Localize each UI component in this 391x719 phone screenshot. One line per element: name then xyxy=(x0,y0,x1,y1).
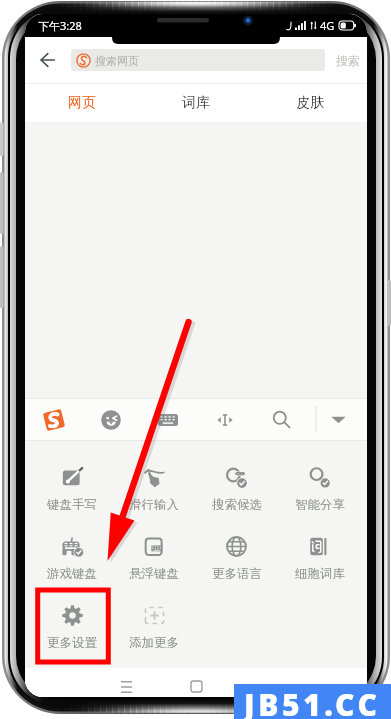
button[interactable]: Back xyxy=(33,37,62,83)
staticText: 下午3:28 xyxy=(38,18,82,33)
button[interactable]: 更多语言 xyxy=(195,510,278,579)
button[interactable]: Keyboard xyxy=(139,399,196,440)
button[interactable]: 更多设置 xyxy=(31,579,113,648)
staticText: JB51.CC xyxy=(244,684,381,719)
staticText: 滑行输入 xyxy=(129,497,179,510)
button[interactable]: 皮肤 xyxy=(253,84,367,122)
staticText: 细胞词库 xyxy=(295,566,345,579)
staticText: 智能分享 xyxy=(295,497,345,510)
staticText: 更多语言 xyxy=(212,566,262,579)
button[interactable]: 搜索网页 xyxy=(71,49,325,71)
button[interactable]: 添加更多 xyxy=(113,579,195,648)
staticText: 皮肤 xyxy=(296,94,324,112)
button[interactable]: 网页 xyxy=(25,84,139,122)
button[interactable]: 键盘手写 xyxy=(31,441,113,510)
button[interactable]: 悬浮键盘 xyxy=(113,510,195,579)
button[interactable]: Collapse xyxy=(310,399,367,440)
button[interactable]: 词库 xyxy=(139,84,253,122)
button[interactable]: 搜索候选 xyxy=(195,441,278,510)
staticText: 4G xyxy=(320,18,335,33)
button[interactable]: Sogou xyxy=(25,399,82,440)
button[interactable]: Recents xyxy=(115,679,137,694)
staticText: 添加更多 xyxy=(129,635,179,648)
staticText: 网页 xyxy=(68,94,96,112)
button[interactable]: Home xyxy=(185,679,207,694)
button[interactable]: 智能分享 xyxy=(278,441,361,510)
staticText: 游戏键盘 xyxy=(47,566,97,579)
staticText: 搜索网页 xyxy=(95,54,139,68)
button[interactable]: Search xyxy=(253,399,310,440)
button[interactable]: 游戏键盘 xyxy=(31,510,113,579)
staticText: 更多设置 xyxy=(47,635,97,648)
button[interactable]: 滑行输入 xyxy=(113,441,195,510)
staticText: 搜索候选 xyxy=(212,497,262,510)
staticText: 悬浮键盘 xyxy=(129,566,179,579)
button[interactable]: Emoji xyxy=(82,399,139,440)
button[interactable]: 细胞词库 xyxy=(278,510,361,579)
button[interactable]: 搜索 xyxy=(328,37,367,83)
staticText: 键盘手写 xyxy=(47,497,97,510)
staticText: 词库 xyxy=(182,94,210,112)
button[interactable]: Move cursor xyxy=(196,399,253,440)
staticText: 搜索 xyxy=(336,53,360,68)
